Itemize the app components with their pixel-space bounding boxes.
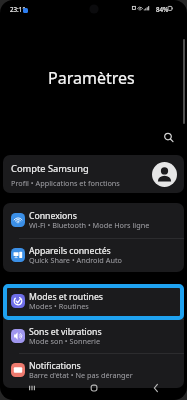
- staticText: 84%: [156, 5, 169, 13]
- staticText: Barre d'état • Ne pas déranger: [29, 370, 133, 380]
- staticText: Modes • Routines: [29, 301, 89, 311]
- staticText: Appareils connectés: [29, 245, 111, 257]
- button[interactable]: Retour: [125, 376, 187, 400]
- staticText: Notifications: [29, 360, 81, 372]
- staticText: Modes et routines: [29, 291, 103, 303]
- button[interactable]: Sons et vibrations: [3, 319, 184, 354]
- staticText: Quick Share • Android Auto: [29, 255, 122, 265]
- staticText: 23:11: [10, 5, 26, 13]
- button[interactable]: Applications récentes: [0, 376, 63, 400]
- button[interactable]: Notifications: [3, 353, 184, 388]
- staticText: Paramètres: [48, 67, 135, 89]
- staticText: Sons et vibrations: [29, 326, 102, 338]
- button[interactable]: Modes et routines: [3, 284, 184, 319]
- staticText: Connexions: [29, 210, 77, 222]
- button[interactable]: Connexions: [3, 203, 184, 238]
- button[interactable]: Appareils connectés: [3, 238, 184, 272]
- button[interactable]: Rechercher: [159, 128, 177, 146]
- staticText: Mode son • Sonnerie: [29, 336, 101, 346]
- staticText: Wi-Fi • Bluetooth • Mode Hors ligne: [29, 220, 150, 230]
- button[interactable]: Compte Samsung: [3, 155, 184, 193]
- staticText: Profil • Applications et fonctions: [11, 178, 120, 188]
- button[interactable]: Accueil: [63, 376, 125, 400]
- staticText: Compte Samsung: [11, 162, 89, 175]
